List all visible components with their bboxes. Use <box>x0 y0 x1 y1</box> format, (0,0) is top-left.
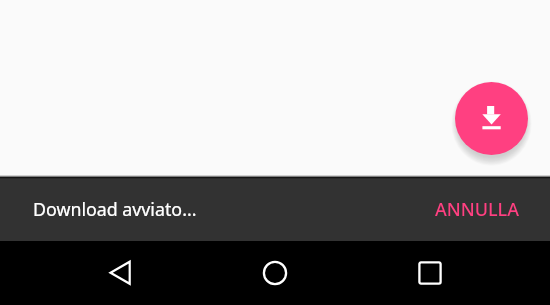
button[interactable]: Download <box>455 82 528 155</box>
button[interactable]: Back <box>88 241 152 305</box>
staticText: ANNULLA <box>435 197 520 222</box>
button[interactable]: Recents <box>398 241 462 305</box>
staticText: Download avviato... <box>33 197 197 221</box>
button[interactable]: ANNULLA <box>402 183 550 236</box>
button[interactable]: Home <box>243 241 307 305</box>
